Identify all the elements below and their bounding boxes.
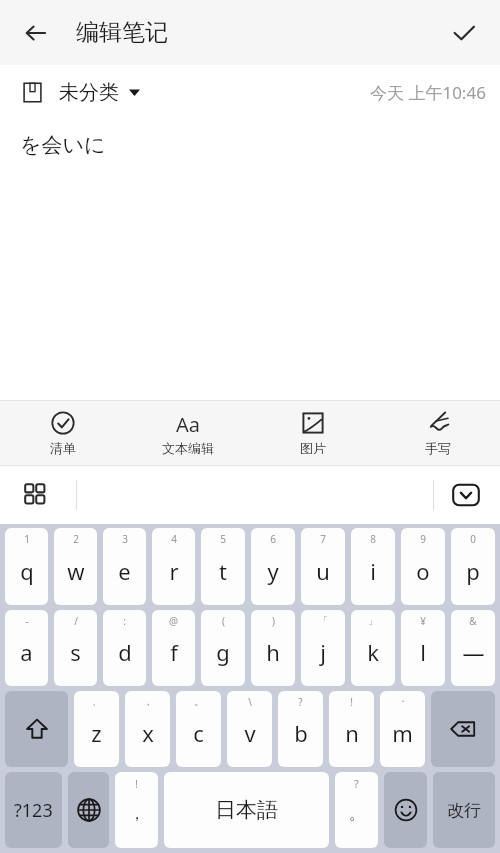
staticText: o: [416, 556, 430, 586]
button[interactable]: 3: [103, 528, 146, 605]
button[interactable]: 、: [74, 691, 119, 767]
staticText: ，: [129, 804, 145, 824]
staticText: 清单: [50, 440, 76, 456]
button[interactable]: Symbols: [5, 772, 62, 848]
staticText: 」: [368, 614, 378, 627]
staticText: x: [142, 718, 154, 748]
staticText: を会いに: [20, 132, 106, 158]
button[interactable]: 。: [176, 691, 221, 767]
staticText: ): [272, 614, 275, 628]
staticText: i: [370, 556, 376, 586]
button[interactable]: Hide keyboard: [446, 475, 486, 515]
staticText: n: [345, 718, 359, 748]
staticText: 0: [470, 532, 476, 546]
button[interactable]: Keyboard options: [14, 473, 58, 517]
staticText: q: [20, 556, 34, 586]
staticText: 图片: [300, 440, 326, 456]
staticText: u: [316, 556, 330, 586]
staticText: d: [118, 637, 132, 667]
staticText: m: [392, 718, 413, 748]
staticText: l: [420, 637, 426, 667]
staticText: 8: [370, 532, 376, 546]
button[interactable]: ¥: [401, 610, 445, 686]
button[interactable]: Backspace: [431, 691, 495, 767]
staticText: !: [135, 776, 138, 791]
button[interactable]: 图片: [250, 401, 375, 465]
button[interactable]: 0: [451, 528, 495, 605]
staticText: Aa: [176, 411, 200, 435]
button[interactable]: 4: [152, 528, 195, 605]
staticText: !: [350, 695, 353, 709]
staticText: \: [248, 695, 252, 709]
button[interactable]: ，: [125, 691, 170, 767]
button[interactable]: Emoji: [384, 772, 427, 848]
button[interactable]: Enter: [433, 772, 495, 848]
button[interactable]: /: [54, 610, 97, 686]
button[interactable]: ・: [380, 691, 425, 767]
staticText: p: [466, 556, 480, 586]
staticText: (: [222, 614, 225, 628]
button[interactable]: \: [227, 691, 272, 767]
button[interactable]: 6: [251, 528, 295, 605]
button[interactable]: !: [115, 772, 158, 848]
button[interactable]: 清单: [0, 401, 125, 465]
staticText: -: [25, 614, 29, 628]
staticText: 7: [320, 532, 326, 546]
staticText: /: [74, 614, 78, 628]
button[interactable]: :: [103, 610, 146, 686]
staticText: r: [169, 556, 179, 586]
button[interactable]: 日本語: [164, 772, 329, 848]
staticText: s: [70, 637, 81, 667]
button[interactable]: 」: [351, 610, 395, 686]
staticText: k: [367, 637, 379, 667]
staticText: 改行: [447, 800, 481, 821]
staticText: ，: [143, 695, 153, 708]
button[interactable]: &: [451, 610, 495, 686]
staticText: z: [91, 718, 102, 748]
staticText: 文本编辑: [162, 440, 214, 456]
staticText: h: [266, 637, 280, 667]
staticText: v: [244, 718, 256, 748]
button[interactable]: ): [251, 610, 295, 686]
staticText: :: [123, 614, 126, 628]
staticText: 手写: [425, 440, 451, 456]
button[interactable]: -: [5, 610, 48, 686]
staticText: —: [462, 637, 485, 667]
button[interactable]: Aa: [125, 401, 250, 465]
button[interactable]: ?: [278, 691, 323, 767]
staticText: 1: [24, 532, 30, 546]
button[interactable]: Save: [440, 9, 488, 57]
button[interactable]: 5: [201, 528, 245, 605]
button[interactable]: 7: [301, 528, 345, 605]
staticText: 3: [122, 532, 128, 546]
button[interactable]: 手写: [375, 401, 500, 465]
staticText: w: [67, 556, 85, 586]
button[interactable]: 1: [5, 528, 48, 605]
staticText: 编辑笔记: [76, 18, 168, 47]
button[interactable]: !: [329, 691, 374, 767]
staticText: c: [193, 718, 204, 748]
button[interactable]: 2: [54, 528, 97, 605]
staticText: ?: [298, 695, 303, 709]
button[interactable]: 「: [301, 610, 345, 686]
staticText: ?123: [14, 798, 53, 823]
staticText: f: [170, 637, 178, 667]
button[interactable]: 9: [401, 528, 445, 605]
staticText: 未分类: [59, 80, 119, 105]
button[interactable]: Change language: [68, 772, 109, 848]
staticText: t: [219, 556, 227, 586]
staticText: e: [118, 556, 131, 586]
button[interactable]: @: [152, 610, 195, 686]
staticText: 、: [92, 695, 102, 708]
staticText: 4: [171, 532, 177, 546]
button[interactable]: Back: [12, 9, 60, 57]
button[interactable]: 未分类: [22, 80, 140, 105]
button[interactable]: Shift: [5, 691, 68, 767]
staticText: @: [169, 614, 178, 628]
button[interactable]: を会いに: [0, 120, 500, 400]
staticText: 今天 上午10:46: [370, 81, 486, 104]
button[interactable]: (: [201, 610, 245, 686]
button[interactable]: 8: [351, 528, 395, 605]
staticText: 日本語: [215, 797, 278, 823]
button[interactable]: ?: [335, 772, 378, 848]
